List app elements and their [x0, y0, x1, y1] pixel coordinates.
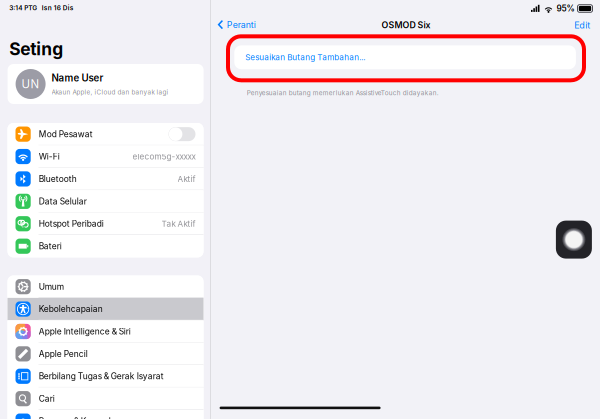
button[interactable]: Apple Pencil [7, 343, 203, 365]
button[interactable]: Mod Pesawat [7, 123, 203, 145]
staticText: 95% [556, 3, 574, 13]
staticText: Akaun Apple, iCloud dan banyak lagi [52, 88, 169, 96]
staticText: Peranti [227, 19, 256, 30]
staticText: 3:14 PTG [9, 4, 37, 12]
staticText: Aktif [177, 174, 195, 184]
staticText: Cari [39, 394, 55, 404]
button[interactable]: Hotspot Peribadi [7, 213, 203, 235]
button[interactable]: Bateri [7, 235, 203, 257]
staticText: Bateri [39, 241, 62, 251]
button[interactable]: UN [8, 64, 204, 104]
staticText: elecom5g-xxxxx [132, 152, 195, 161]
button[interactable]: Umum [7, 275, 203, 298]
staticText: OSMOD Six [381, 20, 430, 30]
staticText: Tak Aktif [161, 219, 195, 229]
staticText: Name User [52, 72, 104, 84]
button[interactable]: AssistiveTouch [556, 221, 592, 259]
staticText: Wi-Fi [39, 151, 60, 162]
staticText: Kebolehcapaian [39, 304, 103, 314]
button[interactable]: Peranti [217, 19, 256, 30]
staticText: Penyesuaian butang memerlukan AssistiveT… [247, 89, 439, 97]
button[interactable]: Data Selular [7, 190, 203, 213]
staticText: UN [22, 77, 40, 91]
staticText: Seting [9, 38, 63, 59]
button[interactable]: Wi-Fi [7, 145, 203, 168]
button[interactable]: Edit [574, 20, 590, 31]
button[interactable]: Cari [7, 387, 203, 410]
staticText: Apple Intelligence & Siri [39, 326, 131, 337]
button[interactable]: Kebolehcapaian [7, 298, 203, 320]
button[interactable]: Bluetooth [7, 168, 203, 190]
button[interactable]: Paparan & Kecerahan [7, 410, 203, 419]
staticText: Hotspot Peribadi [39, 219, 104, 229]
button[interactable]: Sesuaikan Butang Tambahan... [234, 45, 576, 69]
button[interactable]: Apple Intelligence & Siri [7, 320, 203, 343]
staticText: Mod Pesawat [39, 129, 93, 139]
staticText: Edit [574, 20, 590, 31]
staticText: Apple Pencil [39, 349, 88, 359]
button[interactable]: Berbilang Tugas & Gerak Isyarat [7, 365, 203, 387]
staticText: Sesuaikan Butang Tambahan... [245, 52, 365, 62]
staticText: Isn 16 Dis [42, 4, 74, 12]
staticText: Berbilang Tugas & Gerak Isyarat [39, 371, 164, 381]
staticText: Data Selular [39, 196, 87, 206]
staticText: Paparan & Kecerahan [39, 416, 124, 419]
staticText: Bluetooth [39, 174, 77, 184]
staticText: Umum [39, 282, 64, 292]
